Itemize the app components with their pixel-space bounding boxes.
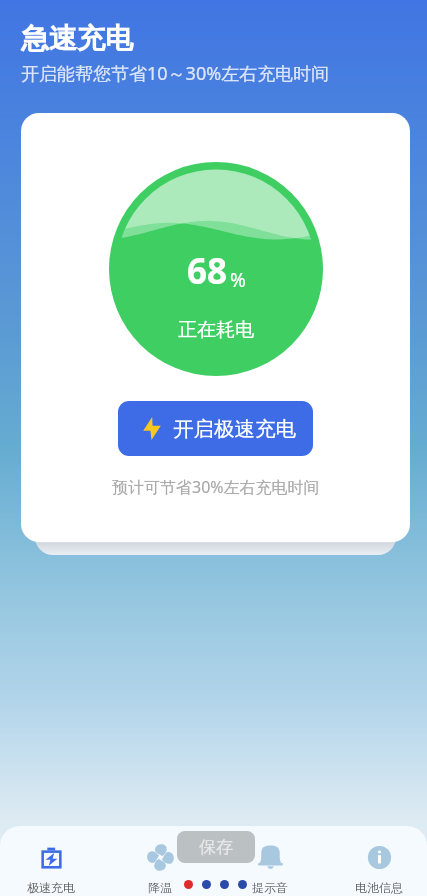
button[interactable]: 开启极速充电 bbox=[118, 401, 313, 456]
button[interactable]: Battery info bbox=[331, 844, 427, 895]
staticText: % bbox=[230, 267, 246, 293]
staticText: 极速充电 bbox=[27, 880, 75, 895]
staticText: 预计可节省30%左右充电时间 bbox=[112, 476, 320, 498]
button[interactable]: Cool down bbox=[112, 844, 208, 895]
staticText: 保存 bbox=[199, 837, 233, 858]
staticText: 急速充电 bbox=[21, 21, 133, 56]
staticText: 提示音 bbox=[252, 880, 288, 895]
staticText: 降温 bbox=[148, 880, 172, 895]
staticText: 68 bbox=[187, 247, 228, 295]
staticText: 正在耗电 bbox=[178, 318, 254, 342]
staticText: 电池信息 bbox=[355, 880, 403, 895]
button[interactable]: Sound bbox=[222, 844, 318, 895]
button[interactable]: 保存 bbox=[177, 831, 255, 863]
staticText: 开启极速充电 bbox=[173, 416, 296, 442]
button[interactable]: Fast charge bbox=[3, 844, 99, 895]
staticText: 开启能帮您节省10～30%左右充电时间 bbox=[21, 61, 330, 86]
